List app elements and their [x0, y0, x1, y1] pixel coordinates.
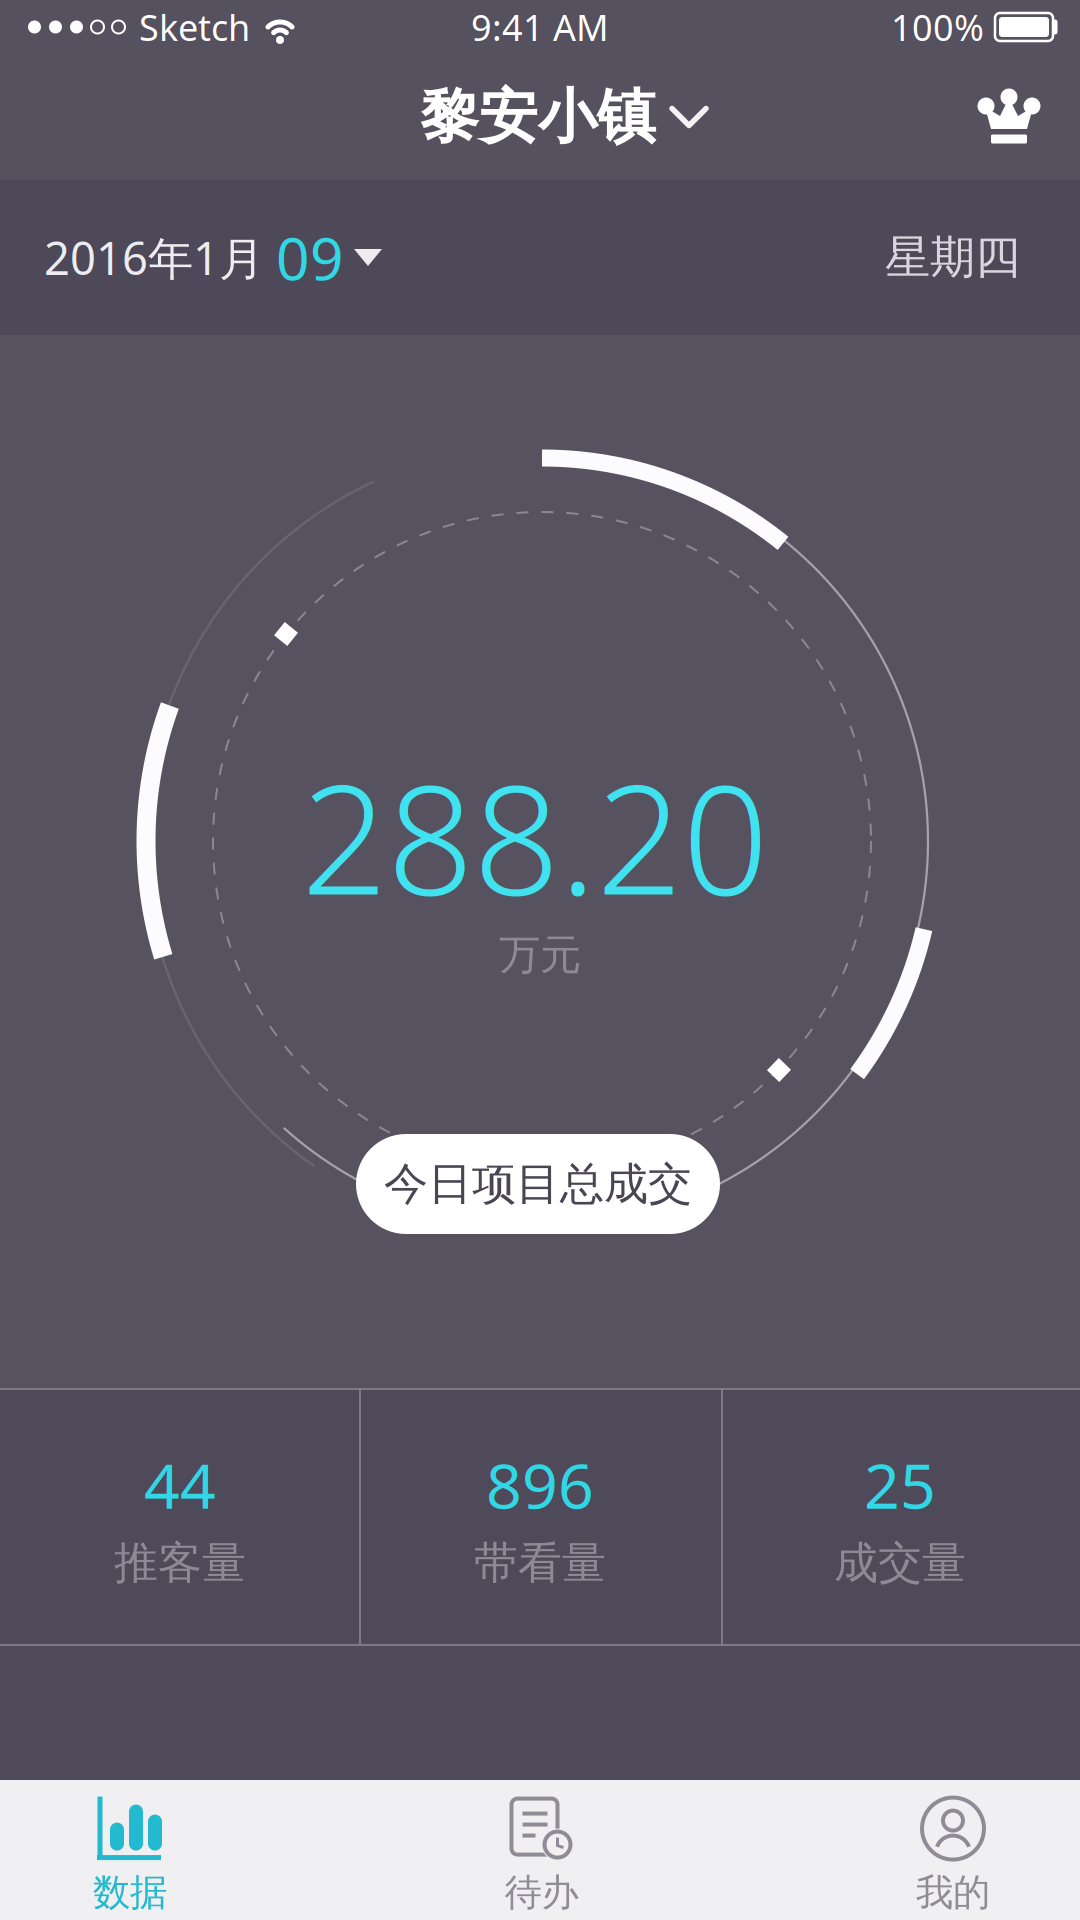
staticText: 黎安小镇	[420, 81, 656, 153]
staticText: 896	[486, 1443, 594, 1526]
staticText: 我的	[916, 1870, 990, 1915]
button[interactable]: 排行榜	[978, 89, 1040, 145]
button[interactable]: 我的	[888, 1785, 1018, 1915]
button[interactable]: 待办	[476, 1785, 606, 1915]
staticText: 25	[864, 1443, 936, 1526]
staticText: 09	[276, 218, 344, 296]
staticText: 推客量	[114, 1536, 246, 1590]
staticText: 万元	[499, 930, 581, 980]
staticText: 288.20	[301, 736, 768, 936]
staticText: 44	[144, 1443, 216, 1526]
button[interactable]: 数据	[65, 1785, 195, 1915]
staticText: 9:41 AM	[471, 3, 609, 51]
staticText: 今日项目总成交	[384, 1157, 692, 1211]
staticText: 成交量	[834, 1536, 966, 1590]
staticText: 2016年1月	[44, 227, 264, 288]
button[interactable]: 黎安小镇	[420, 81, 708, 153]
staticText: 带看量	[474, 1536, 606, 1590]
staticText: 100%	[891, 3, 984, 51]
staticText: Sketch	[139, 3, 250, 51]
staticText: 星期四	[885, 230, 1020, 285]
staticText: 待办	[504, 1870, 578, 1915]
staticText: 数据	[93, 1870, 167, 1915]
button[interactable]: 2016年1月	[44, 218, 382, 296]
